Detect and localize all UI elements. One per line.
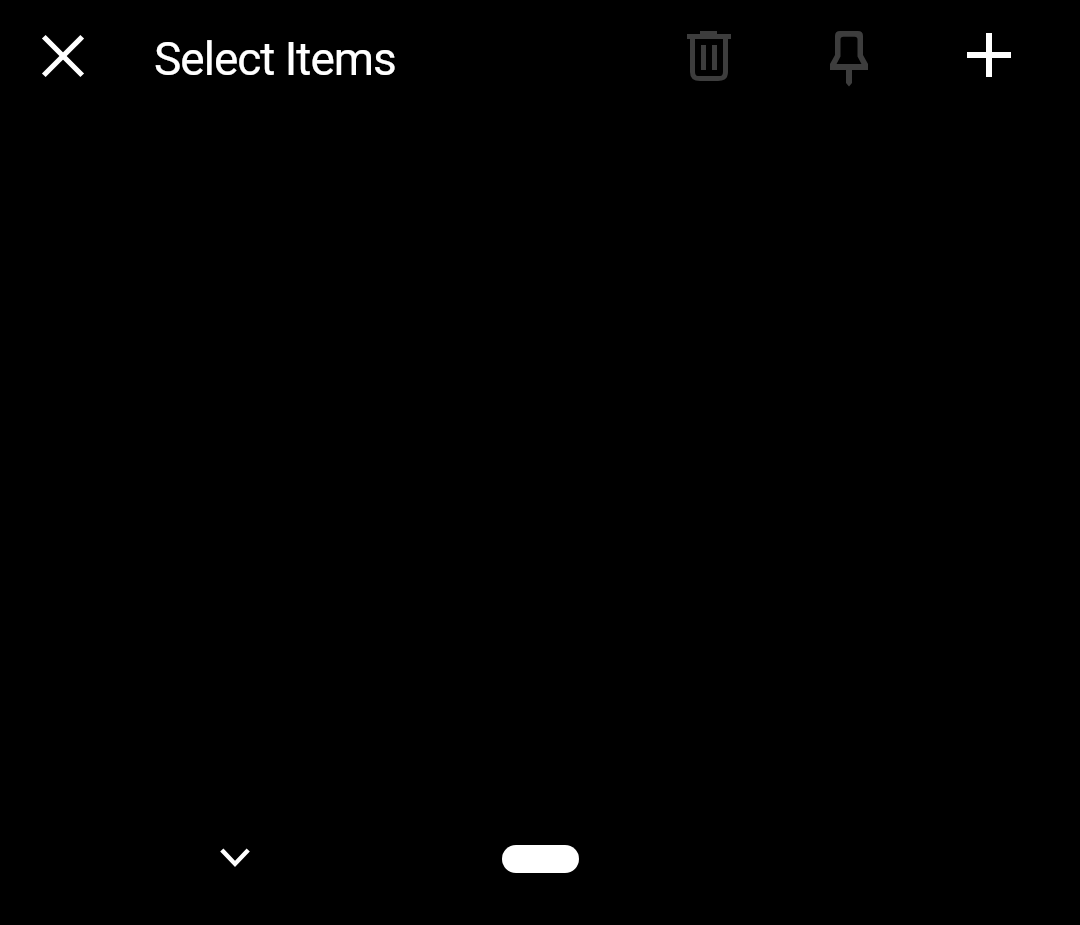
button[interactable]: Add: [949, 15, 1029, 95]
button[interactable]: Delete: [669, 16, 749, 96]
button[interactable]: Collapse: [195, 819, 275, 899]
staticText: Select Items: [154, 32, 396, 86]
button[interactable]: Pin: [809, 20, 889, 100]
button[interactable]: Close: [23, 16, 103, 96]
